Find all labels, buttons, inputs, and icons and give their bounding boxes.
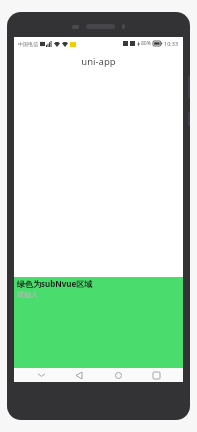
button[interactable]: Home <box>107 368 129 382</box>
button[interactable]: Hide keyboard <box>30 368 52 382</box>
staticText: 80% <box>141 40 151 47</box>
staticText: 10:33 <box>164 40 179 47</box>
staticText: 绿色为subNvue区域 <box>17 278 93 289</box>
staticText: 中国电信 <box>18 41 38 47</box>
button[interactable]: Recent apps <box>145 368 167 382</box>
button[interactable]: Back <box>68 368 90 382</box>
staticText: 请输入 <box>17 290 38 299</box>
button[interactable]: 绿色为subNvue区域 <box>14 277 183 368</box>
button[interactable]: 请输入 <box>17 290 77 300</box>
staticText: uni-app <box>81 55 116 68</box>
